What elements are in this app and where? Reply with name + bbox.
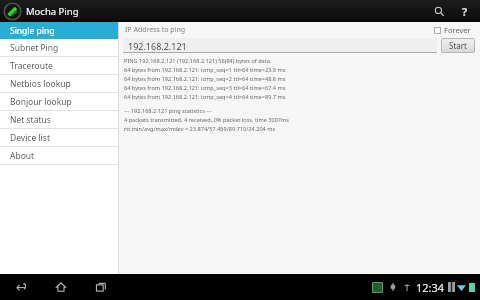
button[interactable]: Traceroute [0,57,118,74]
button[interactable]: Net status [0,111,118,128]
staticText: 64 bytes from 192.168.2.121: icmp_seq=1 … [124,66,286,74]
staticText: Start [449,40,467,51]
button[interactable]: Recent apps [88,274,114,300]
staticText: About [10,150,35,162]
staticText: 4 packets transmitted, 4 received, 0% pa… [124,116,289,124]
staticText: Subnet Ping [10,42,59,54]
staticText: 12:34 [416,280,445,295]
staticText: 64 bytes from 192.168.2.121: icmp_seq=3 … [124,84,286,92]
button[interactable]: Bonjour lookup [0,93,118,110]
button[interactable]: 192.168.2.121 [123,38,437,53]
button[interactable]: Home [48,274,74,300]
staticText: PING 192.168.2.121 (192.168.2.121) 56(84… [124,57,272,65]
staticText: Traceroute [10,60,53,72]
staticText: Mocha Ping [26,5,79,18]
button[interactable]: Netbios lookup [0,75,118,92]
staticText: Netbios lookup [10,78,71,90]
staticText: ? [462,4,468,19]
button[interactable]: Subnet Ping [0,39,118,56]
staticText: rtt min/avg/max/mdev = 23.874/57.469/89.… [124,125,276,133]
staticText: 192.168.2.121 [128,40,187,52]
staticText: Bonjour lookup [10,96,72,108]
button[interactable]: Forever [434,25,471,35]
button[interactable]: Start [441,38,475,53]
button[interactable]: Search [428,0,450,22]
staticText: --- 192.168.2.121 ping statistics --- [124,107,212,115]
button[interactable]: Device list [0,129,118,146]
staticText: Device list [10,132,50,144]
staticText: 64 bytes from 192.168.2.121: icmp_seq=4 … [124,93,286,101]
button[interactable]: Help [456,0,474,22]
button[interactable]: Single ping [0,22,118,39]
staticText: Single ping [10,25,55,37]
staticText: Net status [10,114,51,126]
staticText: IP Address to ping [125,25,186,35]
button[interactable]: Back [8,274,34,300]
staticText: 64 bytes from 192.168.2.121: icmp_seq=2 … [124,75,286,83]
button[interactable]: About [0,147,118,164]
staticText: Forever [444,25,471,35]
